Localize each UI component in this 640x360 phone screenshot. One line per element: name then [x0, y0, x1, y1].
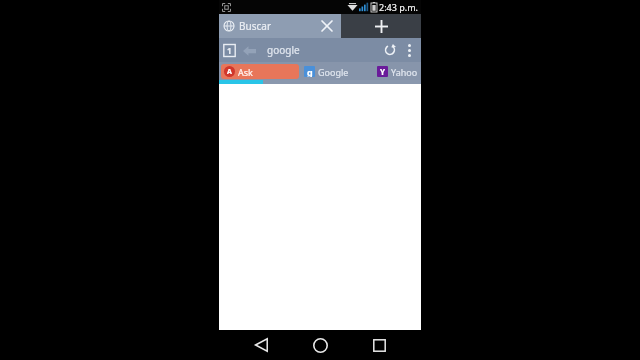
- button[interactable]: Back: [241, 42, 258, 59]
- staticText: Buscar: [239, 19, 318, 33]
- button[interactable]: More options: [400, 41, 418, 59]
- button[interactable]: Recent apps: [362, 330, 396, 360]
- staticText: 1: [227, 45, 232, 56]
- staticText: google: [267, 43, 300, 57]
- button[interactable]: Reload: [380, 40, 400, 60]
- button[interactable]: Close tab: [318, 17, 336, 35]
- button[interactable]: Tabs: [222, 43, 237, 58]
- button[interactable]: google: [267, 43, 380, 57]
- staticText: 2:43 p.m.: [379, 1, 418, 13]
- button[interactable]: A: [221, 64, 299, 79]
- button[interactable]: Home: [303, 330, 337, 360]
- staticText: Ask: [238, 66, 253, 78]
- button[interactable]: Back: [244, 330, 278, 360]
- button[interactable]: Buscar: [219, 14, 341, 38]
- button[interactable]: g: [302, 64, 374, 79]
- staticText: Google: [318, 66, 349, 78]
- staticText: A: [227, 67, 232, 77]
- staticText: Yahoo: [391, 66, 418, 78]
- button[interactable]: Y: [377, 64, 421, 79]
- staticText: g: [307, 66, 313, 77]
- staticText: Y: [380, 66, 386, 77]
- button[interactable]: New tab: [341, 14, 421, 38]
